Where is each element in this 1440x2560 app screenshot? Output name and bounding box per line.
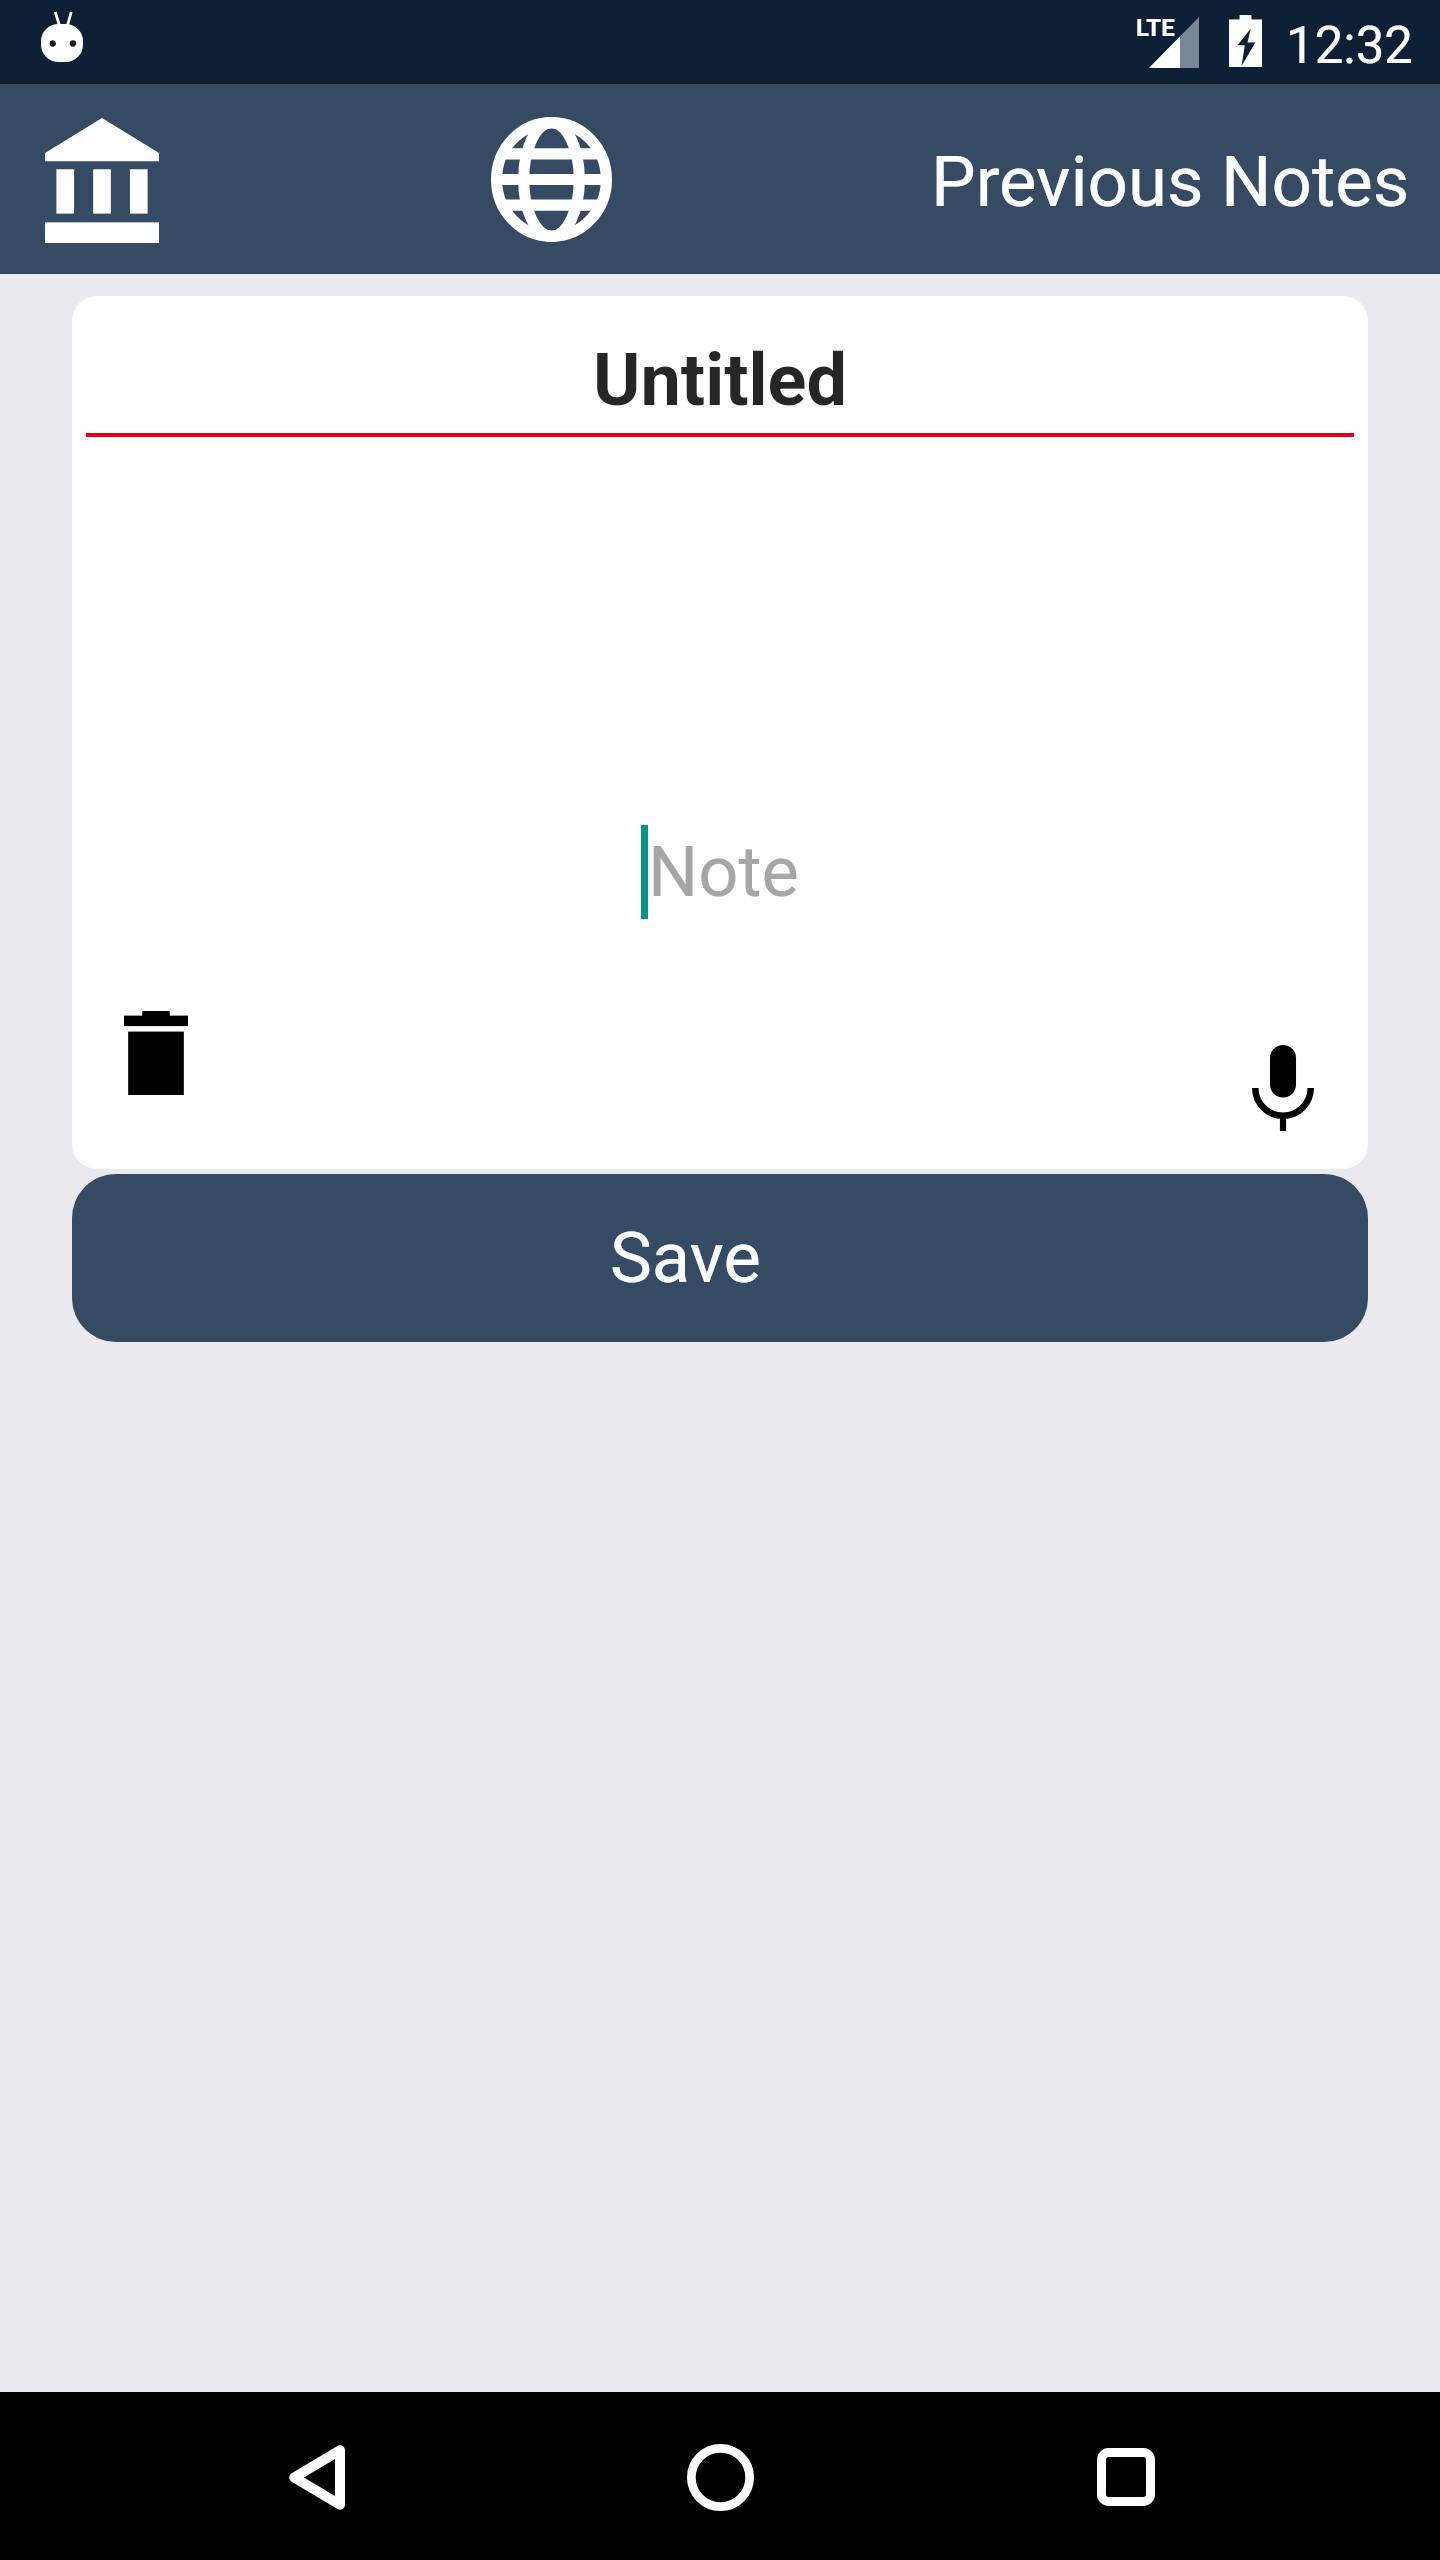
button[interactable]: Accounts <box>21 101 183 260</box>
staticText: 12:32 <box>1286 16 1414 76</box>
button[interactable]: Save <box>72 1174 1368 1342</box>
button[interactable]: Voice input <box>1233 1038 1333 1138</box>
button[interactable]: Home <box>676 2418 764 2536</box>
staticText: LTE <box>1136 14 1175 42</box>
button[interactable]: Previous Notes <box>931 140 1410 223</box>
button[interactable]: Recents <box>1082 2418 1170 2536</box>
button[interactable]: Back <box>272 2418 360 2536</box>
staticText: Note <box>648 831 799 914</box>
button[interactable]: Language <box>470 100 632 259</box>
button[interactable]: Untitled <box>72 338 1368 422</box>
button[interactable]: Note <box>641 825 799 919</box>
staticText: Save <box>610 1217 761 1300</box>
button[interactable]: Delete <box>106 1003 206 1103</box>
